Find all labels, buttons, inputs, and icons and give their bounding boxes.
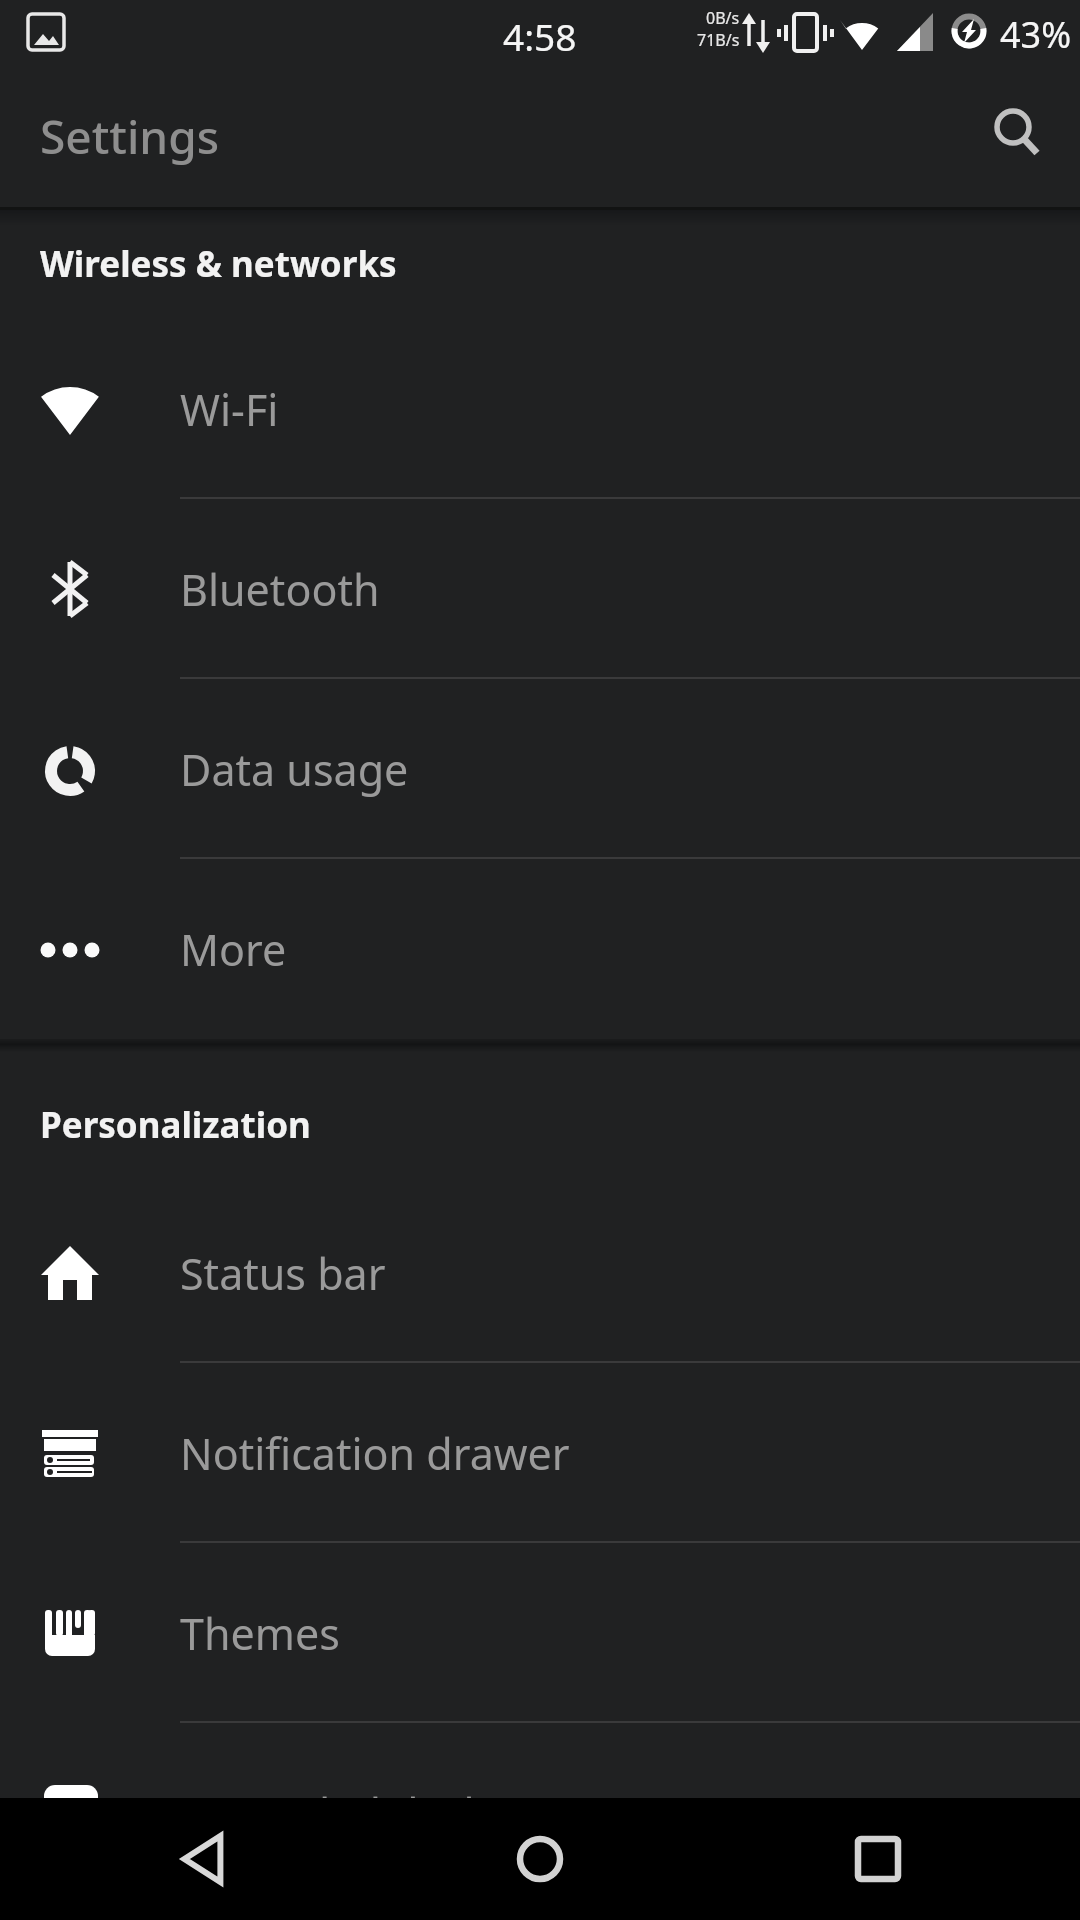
button[interactable] bbox=[360, 1798, 720, 1920]
staticText: 71B/s bbox=[697, 29, 740, 51]
staticText: Wi-Fi bbox=[180, 380, 279, 439]
staticText: 0B/s bbox=[706, 7, 740, 29]
staticText: 4:58 bbox=[503, 11, 577, 61]
staticText: Notification drawer bbox=[180, 1424, 570, 1483]
staticText: Wireless & networks bbox=[40, 240, 397, 288]
staticText: Expanded desktop bbox=[180, 1784, 555, 1843]
staticText: Personalization bbox=[40, 1101, 311, 1149]
staticText: Themes bbox=[180, 1604, 340, 1663]
button[interactable] bbox=[720, 1798, 1080, 1920]
button[interactable]: Expanded desktop bbox=[0, 1723, 1080, 1903]
button[interactable]: Bluetooth bbox=[0, 499, 1080, 679]
staticText: More bbox=[180, 920, 287, 979]
button[interactable]: Data usage bbox=[0, 679, 1080, 859]
staticText: Status bar bbox=[180, 1244, 386, 1303]
button[interactable]: More bbox=[0, 859, 1080, 1039]
button[interactable]: Wi-Fi bbox=[0, 319, 1080, 499]
staticText: 43% bbox=[1000, 10, 1072, 59]
button[interactable] bbox=[0, 1798, 360, 1920]
staticText: Data usage bbox=[180, 740, 409, 799]
staticText: Settings bbox=[40, 105, 220, 168]
staticText: Bluetooth bbox=[180, 560, 380, 619]
button[interactable]: Notification drawer bbox=[0, 1363, 1080, 1543]
button[interactable]: Themes bbox=[0, 1543, 1080, 1723]
button[interactable]: Status bar bbox=[0, 1183, 1080, 1363]
button[interactable] bbox=[986, 103, 1052, 169]
